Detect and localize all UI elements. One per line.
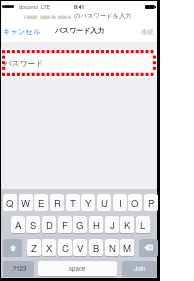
button[interactable]: Backspace: [139, 239, 158, 256]
button[interactable]: U: [97, 194, 111, 211]
staticText: E: [38, 196, 45, 210]
button[interactable]: O: [128, 194, 142, 211]
button[interactable]: T: [66, 194, 80, 211]
button[interactable]: パスワード: [1, 49, 157, 78]
button[interactable]: D: [42, 216, 56, 233]
button[interactable]: A: [11, 216, 25, 233]
staticText: A: [15, 218, 22, 232]
button[interactable]: F: [58, 216, 72, 233]
staticText: T: [70, 196, 76, 210]
staticText: N: [109, 241, 116, 255]
staticText: Y: [85, 196, 92, 210]
button[interactable]: Y: [81, 194, 95, 211]
staticText: L: [140, 218, 146, 232]
button[interactable]: space: [38, 261, 117, 276]
staticText: Z: [31, 241, 37, 255]
button[interactable]: B: [89, 239, 103, 256]
staticText: 接続: [141, 28, 154, 36]
button[interactable]: Join: [122, 261, 157, 276]
staticText: キャンセル: [3, 27, 41, 36]
staticText: C: [62, 241, 69, 255]
staticText: O: [131, 196, 139, 210]
button[interactable]: P: [144, 194, 158, 211]
button[interactable]: E: [34, 194, 48, 211]
staticText: 9:41: [74, 3, 85, 11]
button[interactable]: 接続: [139, 27, 156, 37]
staticText: M: [123, 241, 131, 255]
staticText: S: [30, 218, 37, 232]
button[interactable]: J: [105, 216, 119, 233]
staticText: D: [46, 218, 53, 232]
staticText: .?123: [11, 264, 27, 273]
button[interactable]: L: [136, 216, 150, 233]
staticText: LTE: [41, 3, 51, 11]
button[interactable]: K: [120, 216, 134, 233]
staticText: パスワード入力: [55, 26, 105, 35]
staticText: F: [62, 218, 68, 232]
staticText: Join: [134, 264, 146, 273]
button[interactable]: C: [58, 239, 72, 256]
staticText: W: [21, 196, 31, 210]
button[interactable]: I: [113, 194, 127, 211]
staticText: R: [54, 196, 61, 210]
staticText: のパスワードを入力: [74, 12, 132, 20]
staticText: B: [93, 241, 100, 255]
button[interactable]: X: [42, 239, 56, 256]
button[interactable]: キャンセル: [1, 26, 43, 37]
button[interactable]: Q: [3, 194, 17, 211]
staticText: K: [124, 218, 131, 232]
button[interactable]: Z: [27, 239, 41, 256]
button[interactable]: H: [89, 216, 103, 233]
button[interactable]: V: [73, 239, 87, 256]
staticText: U: [101, 196, 108, 210]
button[interactable]: M: [120, 239, 134, 256]
staticText: docomo: [19, 3, 38, 11]
staticText: Q: [6, 196, 14, 210]
button[interactable]: W: [19, 194, 33, 211]
button[interactable]: S: [26, 216, 40, 233]
button[interactable]: G: [73, 216, 87, 233]
staticText: V: [77, 241, 84, 255]
staticText: P: [148, 196, 155, 210]
staticText: H: [93, 218, 100, 232]
button[interactable]: Shift: [3, 239, 22, 256]
button[interactable]: N: [105, 239, 119, 256]
button[interactable]: R: [50, 194, 64, 211]
button[interactable]: .?123: [3, 261, 34, 276]
staticText: パスワード: [4, 59, 44, 69]
staticText: X: [46, 241, 53, 255]
staticText: G: [76, 218, 84, 232]
staticText: space: [69, 264, 86, 273]
staticText: I: [119, 196, 122, 210]
staticText: J: [110, 218, 115, 232]
